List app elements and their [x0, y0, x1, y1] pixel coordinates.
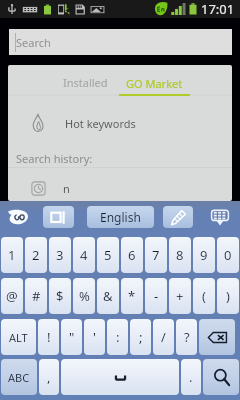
button[interactable]: GO Keyboard — [8, 209, 29, 225]
staticText: ' — [93, 328, 96, 346]
staticText: ABC — [8, 370, 30, 385]
button[interactable]: Space — [61, 359, 179, 395]
button[interactable]: / — [153, 319, 174, 355]
button[interactable]: 0 — [217, 237, 239, 273]
button[interactable]: 3 — [49, 237, 71, 273]
staticText: Search — [16, 35, 51, 50]
staticText: 1 — [8, 246, 16, 264]
button[interactable]: . — [181, 359, 201, 395]
button[interactable]: 7 — [145, 237, 167, 273]
staticText: : — [116, 328, 120, 346]
button[interactable]: ) — [217, 278, 239, 314]
button[interactable]: * — [121, 278, 143, 314]
staticText: % — [79, 287, 90, 305]
staticText: 7 — [152, 246, 160, 264]
button[interactable]: Search — [9, 29, 232, 55]
staticText: ) — [226, 287, 230, 305]
staticText: Hot keywords — [65, 116, 136, 131]
staticText: Installed — [63, 75, 108, 90]
button[interactable]: 5 — [97, 237, 119, 273]
staticText: GO Market — [126, 76, 183, 91]
button[interactable]: Backspace — [199, 319, 235, 355]
button[interactable]: , — [39, 359, 59, 395]
staticText: English — [100, 209, 141, 225]
button[interactable]: 2 — [25, 237, 47, 273]
button[interactable]: ALT — [1, 319, 36, 355]
button[interactable]: $ — [49, 278, 71, 314]
staticText: 0 — [224, 246, 232, 264]
staticText: * — [128, 287, 136, 305]
staticText: ! — [47, 328, 51, 346]
button[interactable]: Hot keywords — [8, 109, 232, 137]
staticText: ; — [139, 328, 143, 346]
staticText: Search history: — [16, 151, 93, 166]
button[interactable]: ; — [130, 319, 151, 355]
staticText: 2 — [32, 246, 40, 264]
button[interactable]: @ — [1, 278, 23, 314]
button[interactable]: + — [169, 278, 191, 314]
button[interactable]: % — [73, 278, 95, 314]
button[interactable]: 6 — [121, 237, 143, 273]
staticText: ? — [184, 328, 190, 346]
staticText: $ — [56, 287, 64, 305]
button[interactable]: ABC — [1, 359, 37, 395]
staticText: & — [103, 287, 113, 305]
staticText: ( — [202, 287, 206, 305]
staticText: - — [154, 287, 159, 305]
button[interactable]: n — [8, 175, 232, 201]
staticText: ALT — [9, 330, 28, 345]
staticText: 4 — [80, 246, 88, 264]
staticText: , — [47, 368, 51, 386]
staticText: # — [32, 287, 41, 305]
staticText: . — [189, 368, 193, 386]
button[interactable]: 4 — [73, 237, 95, 273]
button[interactable]: ' — [84, 319, 105, 355]
staticText: 6 — [128, 246, 136, 264]
button[interactable]: & — [97, 278, 119, 314]
button[interactable]: Installed — [54, 71, 116, 93]
button[interactable]: : — [107, 319, 128, 355]
button[interactable]: - — [145, 278, 167, 314]
button[interactable]: ( — [193, 278, 215, 314]
staticText: @ — [6, 287, 18, 305]
staticText: 9 — [200, 246, 208, 264]
button[interactable]: ! — [38, 319, 59, 355]
staticText: / — [161, 328, 166, 346]
button[interactable]: 9 — [193, 237, 215, 273]
button[interactable]: Draw — [163, 206, 193, 228]
button[interactable]: Layout — [43, 206, 74, 228]
button[interactable]: English — [87, 206, 154, 228]
staticText: 5 — [104, 246, 112, 264]
staticText: 17:01 — [201, 0, 235, 18]
staticText: 3 — [56, 246, 64, 264]
button[interactable]: # — [25, 278, 47, 314]
button[interactable]: Hide keyboard — [208, 205, 232, 229]
button[interactable]: ? — [176, 319, 197, 355]
staticText: 8 — [176, 246, 184, 264]
button[interactable]: " — [61, 319, 82, 355]
button[interactable]: 8 — [169, 237, 191, 273]
staticText: n — [63, 181, 70, 196]
button[interactable]: Search — [203, 359, 239, 395]
staticText: + — [176, 287, 184, 305]
button[interactable]: GO Market — [119, 72, 190, 96]
button[interactable]: 1 — [1, 237, 23, 273]
staticText: " — [69, 328, 75, 346]
